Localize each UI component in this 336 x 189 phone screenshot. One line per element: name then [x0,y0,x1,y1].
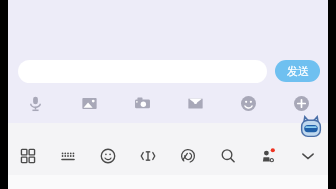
button[interactable]: Camera [116,88,169,118]
button[interactable]: 发送 [275,60,320,82]
button[interactable]: Contacts [248,142,288,170]
button[interactable]: Photo [62,88,116,118]
button[interactable]: More [275,88,328,118]
button[interactable]: Emoji [222,88,275,118]
button[interactable]: Apps [8,142,48,170]
button[interactable]: Assistant [298,114,324,140]
button[interactable]: Attach [168,142,208,170]
button[interactable]: Text style [128,142,168,170]
button[interactable]: Mail [169,88,222,118]
staticText: 发送 [287,64,309,78]
button[interactable]: Stickers [88,142,128,170]
button[interactable]: Search [208,142,248,170]
button[interactable]: Collapse [288,142,328,170]
button[interactable]: Voice message [8,88,62,118]
button[interactable]: Keyboard [48,142,88,170]
